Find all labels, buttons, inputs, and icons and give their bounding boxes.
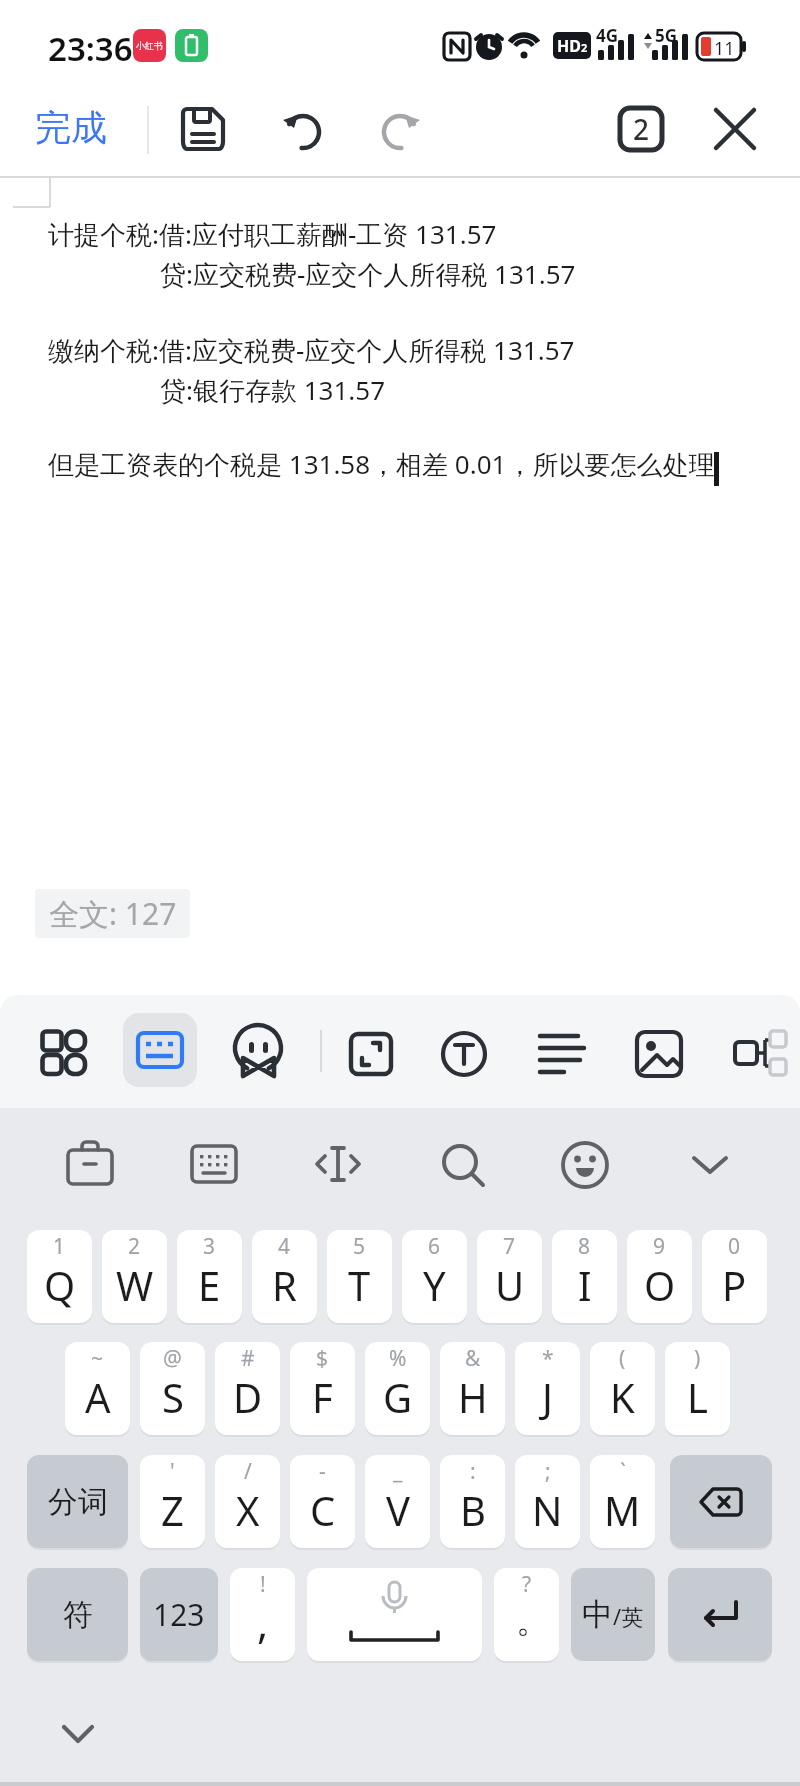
button[interactable]: ? bbox=[494, 1568, 559, 1661]
staticText: * bbox=[542, 1344, 554, 1373]
staticText: 2 bbox=[128, 1232, 141, 1261]
button[interactable]: 2 bbox=[102, 1230, 167, 1323]
button[interactable]: # bbox=[215, 1342, 280, 1435]
button[interactable] bbox=[190, 1144, 238, 1184]
button[interactable] bbox=[561, 1141, 609, 1189]
button[interactable] bbox=[180, 106, 226, 152]
staticText: I bbox=[578, 1258, 592, 1312]
staticText: _ bbox=[393, 1457, 403, 1486]
button[interactable]: / bbox=[215, 1455, 280, 1548]
staticText: , bbox=[257, 1594, 269, 1651]
staticText: 中/英 bbox=[582, 1595, 644, 1634]
button[interactable] bbox=[690, 1150, 730, 1180]
staticText: 9 bbox=[653, 1232, 666, 1261]
button[interactable] bbox=[307, 1568, 482, 1661]
staticText: ? bbox=[522, 1570, 532, 1599]
staticText: # bbox=[241, 1344, 255, 1373]
staticText: 7 bbox=[503, 1232, 516, 1261]
button[interactable] bbox=[538, 1032, 588, 1076]
button[interactable] bbox=[712, 106, 758, 152]
button[interactable]: ` bbox=[590, 1455, 655, 1548]
staticText: P bbox=[722, 1258, 747, 1312]
button[interactable] bbox=[349, 1032, 393, 1076]
button[interactable] bbox=[635, 1030, 683, 1078]
staticText: $ bbox=[316, 1344, 329, 1373]
staticText: J bbox=[542, 1370, 553, 1424]
staticText: E bbox=[198, 1258, 221, 1312]
button[interactable]: ~ bbox=[65, 1342, 130, 1435]
button[interactable]: 1 bbox=[27, 1230, 92, 1323]
staticText: ( bbox=[619, 1344, 626, 1373]
button[interactable]: ' bbox=[140, 1455, 205, 1548]
button[interactable]: ) bbox=[665, 1342, 730, 1435]
button[interactable]: 8 bbox=[552, 1230, 617, 1323]
staticText: 4 bbox=[278, 1232, 291, 1261]
staticText: 计提个税:借:应付职工薪酬-工资 131.57 bbox=[48, 216, 497, 252]
button[interactable]: * bbox=[515, 1342, 580, 1435]
button[interactable]: & bbox=[440, 1342, 505, 1435]
button[interactable] bbox=[668, 1568, 772, 1661]
staticText: D bbox=[233, 1370, 263, 1424]
button[interactable] bbox=[123, 1013, 197, 1087]
button[interactable]: 完成 bbox=[35, 105, 120, 155]
button[interactable] bbox=[378, 108, 422, 152]
staticText: ` bbox=[620, 1457, 626, 1486]
staticText: X bbox=[236, 1483, 260, 1537]
button[interactable]: 符 bbox=[27, 1568, 128, 1661]
button[interactable] bbox=[440, 1030, 488, 1078]
button[interactable]: 中/英 bbox=[571, 1568, 655, 1661]
button[interactable]: 7 bbox=[477, 1230, 542, 1323]
button[interactable]: : bbox=[440, 1455, 505, 1548]
staticText: 11 bbox=[714, 36, 735, 61]
staticText: A bbox=[85, 1370, 111, 1424]
button[interactable] bbox=[66, 1140, 114, 1188]
button[interactable]: 9 bbox=[627, 1230, 692, 1323]
staticText: 但是工资表的个税是 131.58，相差 0.01，所以要怎么处理 bbox=[48, 446, 715, 482]
button[interactable] bbox=[58, 1715, 98, 1755]
staticText: W bbox=[116, 1258, 154, 1312]
button[interactable]: ; bbox=[515, 1455, 580, 1548]
button[interactable]: 123 bbox=[140, 1568, 218, 1661]
staticText: 8 bbox=[578, 1232, 591, 1261]
staticText: : bbox=[470, 1457, 476, 1486]
button[interactable]: ( bbox=[590, 1342, 655, 1435]
button[interactable] bbox=[440, 1142, 488, 1190]
button[interactable]: 0 bbox=[702, 1230, 767, 1323]
staticText: S bbox=[162, 1370, 184, 1424]
staticText: U bbox=[495, 1258, 525, 1312]
button[interactable] bbox=[315, 1142, 361, 1186]
staticText: Q bbox=[44, 1258, 76, 1312]
staticText: 5G bbox=[655, 24, 678, 47]
button[interactable]: 2 bbox=[618, 106, 664, 152]
staticText: 123 bbox=[153, 1594, 205, 1635]
staticText: - bbox=[319, 1457, 326, 1486]
button[interactable]: 分词 bbox=[27, 1455, 128, 1548]
button[interactable] bbox=[232, 1022, 288, 1080]
staticText: N bbox=[532, 1483, 563, 1537]
button[interactable]: 4 bbox=[252, 1230, 317, 1323]
staticText: 5 bbox=[353, 1232, 366, 1261]
button[interactable]: $ bbox=[290, 1342, 355, 1435]
staticText: G bbox=[383, 1370, 413, 1424]
button[interactable] bbox=[281, 108, 325, 152]
button[interactable]: _ bbox=[365, 1455, 430, 1548]
button[interactable]: 6 bbox=[402, 1230, 467, 1323]
button[interactable]: ! bbox=[230, 1568, 295, 1661]
staticText: / bbox=[244, 1457, 252, 1486]
staticText: ! bbox=[260, 1570, 266, 1599]
button[interactable] bbox=[670, 1455, 772, 1548]
button[interactable]: % bbox=[365, 1342, 430, 1435]
staticText: C bbox=[310, 1483, 336, 1537]
button[interactable]: - bbox=[290, 1455, 355, 1548]
staticText: HD2 bbox=[557, 35, 588, 57]
button[interactable]: @ bbox=[140, 1342, 205, 1435]
staticText: 小红书 bbox=[136, 40, 163, 51]
button[interactable]: 3 bbox=[177, 1230, 242, 1323]
staticText: 完成 bbox=[35, 105, 107, 150]
button[interactable] bbox=[733, 1028, 787, 1080]
button[interactable] bbox=[40, 1029, 86, 1075]
button[interactable]: 5 bbox=[327, 1230, 392, 1323]
staticText: V bbox=[386, 1483, 410, 1537]
staticText: 贷:应交税费-应交个人所得税 131.57 bbox=[160, 256, 576, 292]
staticText: 0 bbox=[728, 1232, 741, 1261]
